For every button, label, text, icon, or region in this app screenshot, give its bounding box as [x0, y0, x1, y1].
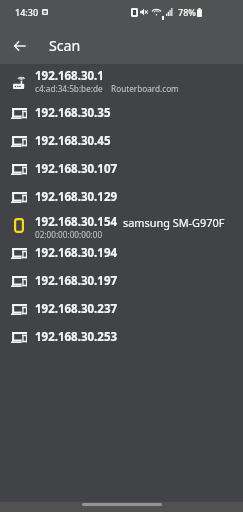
- button[interactable]: 192.168.30.45: [0, 127, 243, 155]
- button[interactable]: 192.168.30.129: [0, 183, 243, 211]
- button[interactable]: 192.168.30.1: [0, 64, 243, 99]
- staticText: 192.168.30.129: [35, 189, 118, 205]
- button[interactable]: 192.168.30.35: [0, 99, 243, 127]
- staticText: 192.168.30.107: [35, 161, 118, 177]
- staticText: 78%: [178, 6, 196, 18]
- button[interactable]: 192.168.30.253: [0, 323, 243, 351]
- staticText: 192.168.30.154: [35, 214, 118, 230]
- button[interactable]: 192.168.30.194: [0, 239, 243, 267]
- button[interactable]: Back: [1, 28, 37, 64]
- staticText: samsung SM-G970F: [123, 215, 225, 230]
- button[interactable]: 192.168.30.154: [0, 211, 243, 239]
- button[interactable]: 192.168.30.237: [0, 295, 243, 323]
- staticText: 192.168.30.253: [35, 329, 118, 345]
- staticText: 192.168.30.197: [35, 273, 118, 289]
- staticText: Scan: [49, 36, 81, 55]
- button[interactable]: 192.168.30.197: [0, 267, 243, 295]
- staticText: 192.168.30.45: [35, 133, 111, 149]
- button[interactable]: 192.168.30.107: [0, 155, 243, 183]
- staticText: 14:30: [15, 6, 39, 18]
- staticText: 02:00:00:00:00:00: [35, 229, 103, 240]
- staticText: 192.168.30.35: [35, 105, 111, 121]
- staticText: c4:ad:34:5b:be:de Routerboard.com: [35, 83, 179, 94]
- staticText: 192.168.30.237: [35, 301, 118, 317]
- staticText: 192.168.30.1: [35, 68, 104, 84]
- staticText: 192.168.30.194: [35, 245, 118, 261]
